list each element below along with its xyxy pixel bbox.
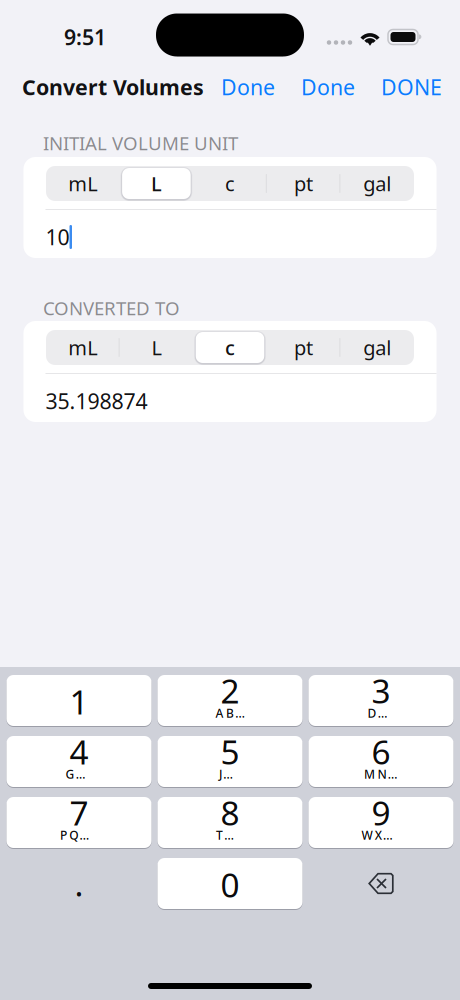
button[interactable]: 4 — [6, 736, 151, 787]
staticText: Convert Volumes — [22, 73, 204, 101]
button[interactable]: Done — [301, 73, 355, 101]
staticText: Done — [301, 73, 355, 101]
button[interactable]: Done — [221, 73, 275, 101]
button[interactable]: 9 — [308, 797, 453, 848]
staticText: MNO — [364, 766, 398, 782]
staticText: 3 — [371, 668, 390, 713]
staticText: 9:51 — [64, 23, 106, 51]
staticText: INITIAL VOLUME UNIT — [43, 131, 238, 155]
staticText: gal — [363, 170, 391, 197]
staticText: ABC — [216, 705, 244, 721]
staticText: pt — [294, 334, 313, 361]
staticText: 1 — [69, 679, 88, 724]
button[interactable]: 1 — [6, 675, 151, 726]
staticText: pt — [294, 170, 313, 197]
staticText: mL — [68, 334, 97, 361]
staticText: CONVERTED TO — [43, 296, 180, 320]
staticText: WXYZ — [361, 827, 401, 843]
button[interactable]: Decimal point — [6, 858, 151, 909]
staticText: 0 — [220, 862, 239, 907]
staticText: mL — [68, 170, 97, 197]
staticText: Done — [221, 73, 275, 101]
staticText: JKL — [219, 766, 241, 782]
button[interactable]: 3 — [308, 675, 453, 726]
button[interactable]: 0 — [157, 858, 302, 909]
staticText: 2 — [220, 668, 239, 713]
staticText: L — [151, 170, 162, 197]
staticText: 6 — [371, 729, 390, 774]
button[interactable]: 7 — [6, 797, 151, 848]
staticText: TUV — [216, 827, 244, 843]
staticText: 35.198874 — [45, 387, 147, 415]
staticText: 10 — [45, 223, 69, 251]
button[interactable]: 6 — [308, 736, 453, 787]
button[interactable]: 8 — [157, 797, 302, 848]
staticText: DEF — [368, 705, 394, 721]
staticText: PQRS — [60, 827, 98, 843]
button[interactable]: 5 — [157, 736, 302, 787]
staticText: 4 — [69, 729, 88, 774]
staticText: 9 — [371, 790, 390, 835]
button[interactable]: Delete — [308, 858, 453, 909]
staticText: gal — [363, 334, 391, 361]
staticText: L — [151, 334, 161, 361]
staticText: 5 — [220, 729, 239, 774]
staticText: . — [74, 861, 83, 906]
staticText: c — [225, 334, 235, 361]
staticText: 8 — [220, 790, 239, 835]
button[interactable]: DONE — [381, 73, 442, 101]
staticText: DONE — [381, 73, 442, 101]
staticText: c — [225, 170, 235, 197]
button[interactable]: 2 — [157, 675, 302, 726]
staticText: 7 — [69, 790, 88, 835]
staticText: GHI — [66, 766, 92, 782]
